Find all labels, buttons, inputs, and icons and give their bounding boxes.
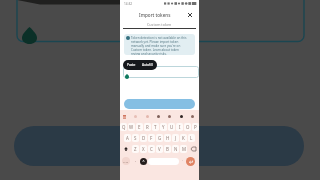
button[interactable]: Keyboard tool: [122, 114, 127, 119]
staticText: I: [179, 124, 181, 130]
button[interactable]: Keyboard tool: [167, 114, 172, 119]
button[interactable]: Paste: [125, 63, 138, 67]
staticText: Q: [122, 124, 126, 130]
button[interactable]: Keyboard tool: [145, 114, 150, 119]
button[interactable]: H: [164, 134, 171, 142]
button[interactable]: R: [144, 123, 151, 131]
staticText: P: [194, 124, 197, 130]
staticText: .: [182, 157, 184, 162]
button[interactable]: X: [140, 145, 147, 153]
staticText: Custom token: [147, 22, 172, 27]
button[interactable]: T: [152, 123, 159, 131]
staticText: Y: [162, 124, 165, 130]
staticText: G: [158, 135, 162, 141]
button[interactable]: [124, 99, 195, 109]
staticText: R: [146, 124, 149, 130]
button[interactable]: Z: [132, 145, 139, 153]
button[interactable]: Comma: [133, 157, 138, 162]
staticText: V: [158, 146, 161, 152]
button[interactable]: Keyboard tool: [179, 114, 184, 119]
button[interactable]: U: [168, 123, 175, 131]
staticText: A: [126, 135, 129, 141]
button[interactable]: Symbols: [122, 157, 130, 165]
button[interactable]: Voice input: [140, 158, 147, 165]
button[interactable]: [123, 66, 199, 78]
button[interactable]: K: [180, 134, 187, 142]
staticText: L: [190, 135, 193, 141]
button[interactable]: Shift: [121, 145, 131, 153]
button[interactable]: B: [164, 145, 171, 153]
button[interactable]: P: [192, 123, 199, 131]
button[interactable]: G: [156, 134, 163, 142]
button[interactable]: E: [136, 123, 143, 131]
button[interactable]: V: [156, 145, 163, 153]
button[interactable]: Close: [186, 11, 194, 19]
staticText: U: [170, 124, 174, 130]
staticText: E: [138, 124, 141, 130]
staticText: Paste: [127, 63, 136, 67]
button[interactable]: Autofill: [140, 63, 155, 67]
button[interactable]: Q: [120, 123, 127, 131]
staticText: 14:32: [124, 2, 133, 6]
staticText: M: [182, 146, 186, 152]
staticText: O: [186, 124, 190, 130]
staticText: J: [175, 135, 177, 141]
staticText: D: [142, 135, 146, 141]
staticText: ?123: [123, 160, 129, 163]
staticText: W: [129, 124, 134, 130]
staticText: T: [154, 124, 157, 130]
button[interactable]: W: [128, 123, 135, 131]
button[interactable]: Backspace: [188, 145, 198, 153]
staticText: Import tokens: [139, 12, 171, 18]
staticText: Token detection is not available on this…: [131, 36, 187, 55]
button[interactable]: Space: [148, 158, 179, 165]
button[interactable]: N: [172, 145, 179, 153]
staticText: K: [182, 135, 185, 141]
staticText: B: [166, 146, 169, 152]
button[interactable]: Period: [180, 157, 185, 162]
button[interactable]: A: [124, 134, 131, 142]
staticText: X: [142, 146, 145, 152]
button[interactable]: S: [132, 134, 139, 142]
button[interactable]: Custom token: [120, 20, 199, 28]
staticText: Autofill: [142, 63, 153, 67]
button[interactable]: Keyboard tool: [190, 114, 195, 119]
button[interactable]: Keyboard tool: [133, 114, 138, 119]
button[interactable]: J: [172, 134, 179, 142]
staticText: N: [174, 146, 178, 152]
button[interactable]: Enter: [186, 157, 195, 166]
staticText: ,: [135, 157, 137, 162]
button[interactable]: O: [184, 123, 191, 131]
button[interactable]: C: [148, 145, 155, 153]
staticText: Z: [134, 146, 137, 152]
staticText: S: [134, 135, 137, 141]
staticText: H: [166, 135, 170, 141]
button[interactable]: M: [180, 145, 187, 153]
button[interactable]: Keyboard tool: [156, 114, 161, 119]
button[interactable]: D: [140, 134, 147, 142]
button[interactable]: F: [148, 134, 155, 142]
staticText: C: [150, 146, 153, 152]
button[interactable]: L: [188, 134, 195, 142]
button[interactable]: Y: [160, 123, 167, 131]
staticText: F: [150, 135, 153, 141]
button[interactable]: I: [176, 123, 183, 131]
